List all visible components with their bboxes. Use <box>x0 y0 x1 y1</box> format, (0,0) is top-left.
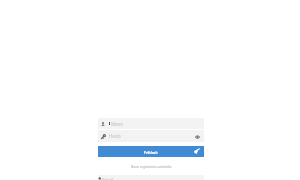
staticText: Heslo <box>109 133 121 139</box>
staticText: Prihlasit <box>144 150 158 154</box>
other: Send <box>194 149 200 155</box>
button[interactable]: Account <box>98 175 204 180</box>
other: Account <box>98 177 102 180</box>
staticText: Email <box>102 177 114 180</box>
button[interactable]: Prihlasit <box>98 146 204 157</box>
other: Show password <box>195 134 200 139</box>
other: Account <box>101 122 105 126</box>
button[interactable]: Account <box>98 118 204 129</box>
staticText: Meno <box>111 121 123 127</box>
other: Password <box>101 134 106 139</box>
button[interactable]: Password <box>98 130 204 142</box>
staticText: Nova registracia uzivatela <box>98 164 204 169</box>
